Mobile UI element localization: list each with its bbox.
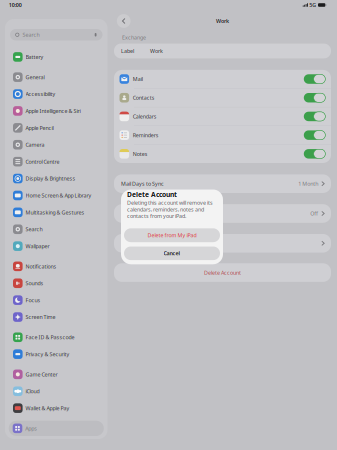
button[interactable]: Face ID & Passcode — [5, 329, 107, 346]
button[interactable]: Back — [116, 13, 132, 29]
button[interactable]: General — [5, 69, 107, 86]
staticText: Home Screen & App Library — [26, 192, 92, 199]
staticText: Delete Account — [127, 190, 177, 199]
button[interactable]: Apps — [5, 421, 107, 439]
button[interactable]: Game Center — [5, 366, 107, 383]
staticText: Work — [216, 17, 229, 25]
button[interactable]: Control Centre — [5, 153, 107, 170]
staticText: Wallpaper — [26, 243, 50, 250]
staticText: Privacy & Security — [26, 351, 70, 358]
button[interactable]: Focus — [5, 292, 107, 309]
staticText: Screen Time — [26, 313, 56, 321]
button[interactable]: Search — [5, 221, 107, 238]
staticText: Mail — [133, 75, 143, 83]
button[interactable]: iCloud — [5, 383, 107, 400]
button[interactable]: Cancel — [124, 246, 220, 260]
button[interactable]: Calendars — [114, 107, 331, 126]
staticText: 5G — [309, 1, 316, 9]
button[interactable]: Apple Intelligence & Siri — [5, 102, 107, 119]
button[interactable]: Battery — [5, 48, 107, 65]
staticText: Display & Brightness — [26, 175, 76, 182]
staticText: Work — [150, 47, 163, 54]
staticText: Delete Account — [204, 269, 241, 276]
button[interactable]: Advanced Settings — [114, 234, 331, 253]
staticText: Mail Folders to Push — [121, 210, 169, 217]
staticText: Mail Days to Sync — [121, 180, 164, 187]
button[interactable]: Apple Pencil — [5, 119, 107, 136]
staticText: Apps — [25, 425, 37, 432]
button[interactable]: Sounds — [5, 275, 107, 292]
staticText: Apple Intelligence & Siri — [26, 107, 81, 114]
button[interactable]: Multitasking & Gestures — [5, 204, 107, 221]
staticText: Control Centre — [26, 158, 60, 165]
button[interactable]: Screen Time — [5, 309, 107, 325]
staticText: Exchange — [122, 34, 146, 41]
staticText: Battery — [26, 53, 44, 60]
staticText: contacts from your iPad. — [127, 212, 186, 220]
staticText: Accessibility — [26, 90, 56, 98]
staticText: Apple Pencil — [26, 124, 54, 131]
staticText: Game Center — [26, 371, 58, 378]
staticText: General — [26, 74, 45, 81]
staticText: Search — [26, 226, 43, 233]
staticText: Camera — [26, 141, 45, 148]
staticText: calendars, reminders, notes and — [127, 206, 204, 213]
staticText: Calendars — [133, 113, 157, 120]
staticText: Notes — [133, 150, 148, 157]
staticText: iCloud — [26, 388, 40, 395]
button[interactable]: Reminders — [114, 126, 331, 144]
staticText: Search — [23, 31, 40, 38]
button[interactable]: Home Screen & App Library — [5, 187, 107, 204]
button[interactable]: Accessibility — [5, 86, 107, 102]
staticText: Wallet & Apple Pay — [26, 405, 70, 412]
button[interactable]: Contacts — [114, 89, 331, 107]
staticText: 10:00 — [9, 1, 22, 9]
staticText: Notifications — [26, 263, 57, 270]
staticText: Focus — [26, 297, 41, 304]
staticText: Face ID & Passcode — [26, 334, 75, 341]
staticText: Reminders — [133, 132, 159, 139]
staticText: 1 Month — [298, 180, 318, 187]
button[interactable]: Mail Days to Sync — [114, 174, 331, 193]
button[interactable]: Camera — [5, 136, 107, 153]
button[interactable]: Display & Brightness — [5, 170, 107, 187]
staticText: Multitasking & Gestures — [26, 209, 85, 216]
button[interactable]: Mail — [114, 70, 331, 88]
staticText: Advanced Settings — [121, 240, 166, 247]
button[interactable]: Mail Folders to Push — [114, 204, 331, 223]
button[interactable]: Delete from My iPad — [124, 228, 220, 242]
button[interactable]: Wallet & Apple Pay — [5, 400, 107, 417]
staticText: Deleting this account will remove its — [127, 199, 213, 206]
button[interactable]: Notes — [114, 145, 331, 163]
staticText: Label — [121, 47, 134, 54]
staticText: Delete from My iPad — [147, 232, 196, 239]
staticText: Sounds — [26, 280, 44, 287]
staticText: Cancel — [163, 250, 180, 257]
button[interactable]: Notifications — [5, 258, 107, 275]
staticText: Contacts — [133, 94, 155, 101]
button[interactable]: Privacy & Security — [5, 346, 107, 363]
button[interactable]: Delete Account — [114, 263, 331, 282]
button[interactable]: Wallpaper — [5, 238, 107, 255]
staticText: Off — [310, 210, 318, 217]
